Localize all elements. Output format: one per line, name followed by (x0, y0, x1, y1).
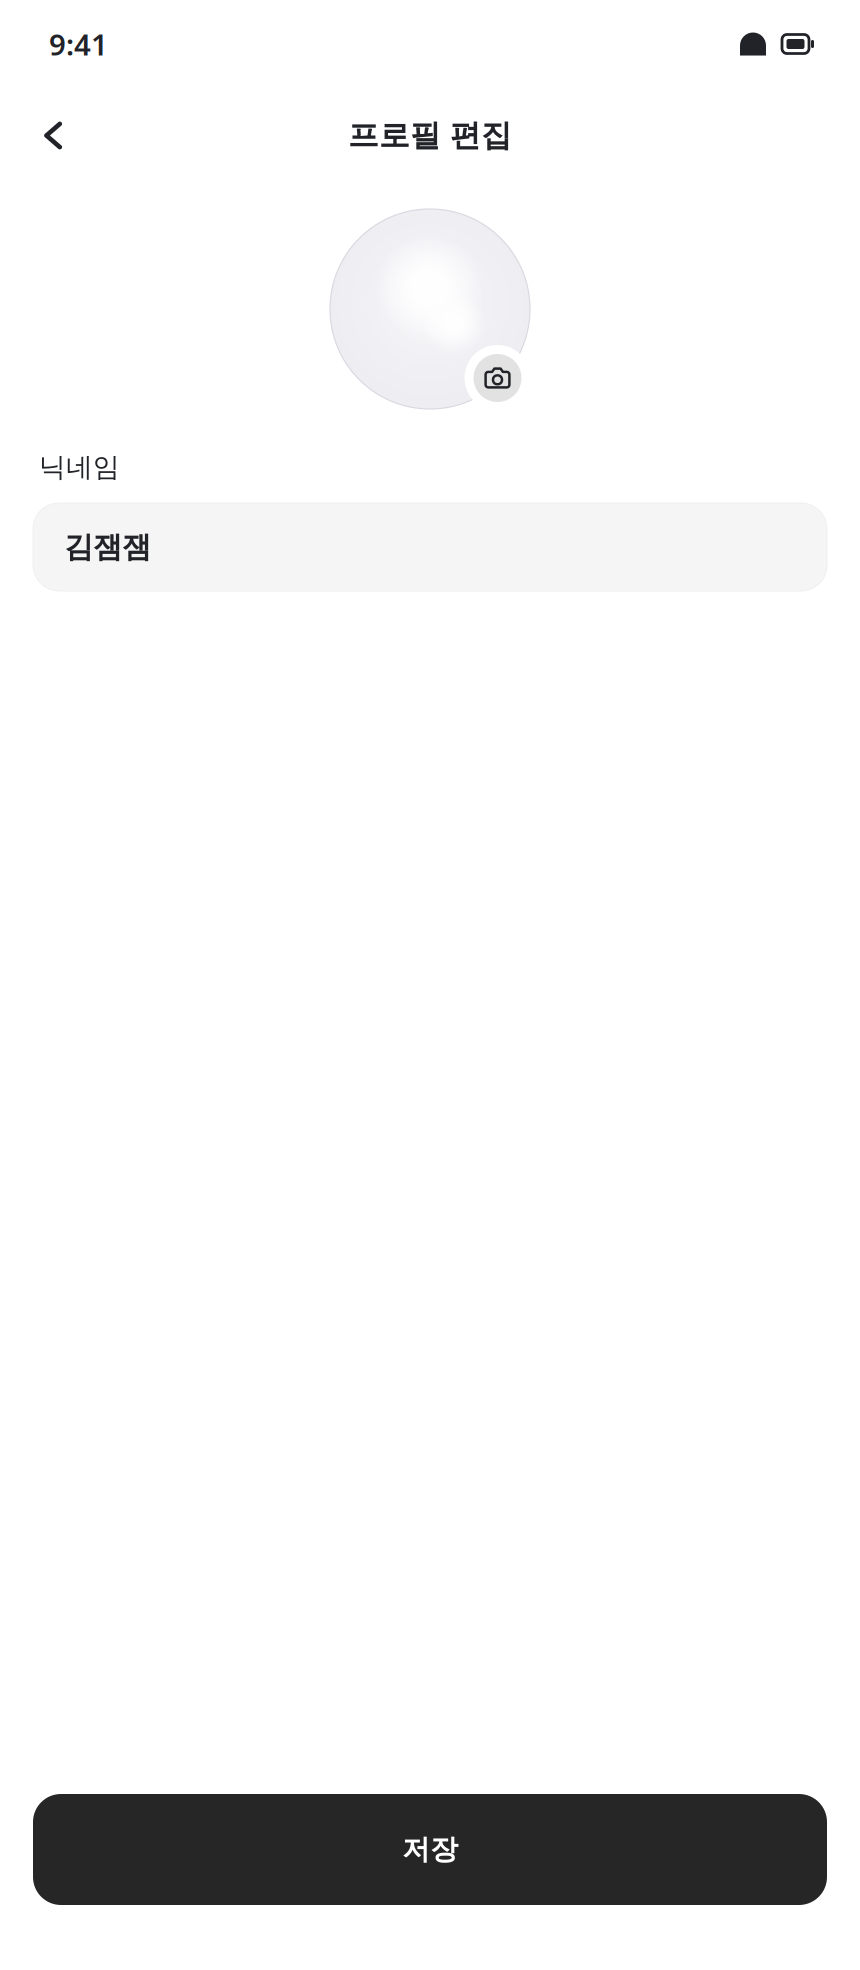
staticText: 9:41 (49, 24, 108, 63)
staticText: 저장 (402, 1832, 458, 1867)
staticText: 프로필 편집 (348, 117, 512, 154)
button[interactable]: Back (18, 105, 88, 165)
button[interactable]: Change profile photo (464, 345, 530, 411)
staticText: 닉네임 (39, 451, 120, 483)
button[interactable]: 김잼잼 (33, 503, 827, 591)
button[interactable]: 저장 (33, 1794, 827, 1905)
staticText: 김잼잼 (64, 529, 151, 565)
